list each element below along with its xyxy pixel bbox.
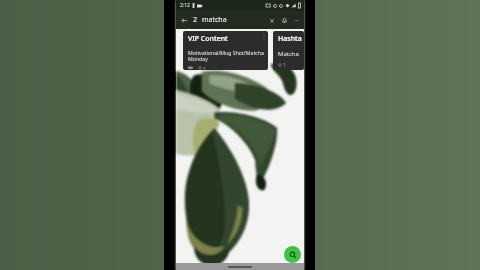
button[interactable]: Search — [284, 246, 301, 263]
staticText: 1 — [283, 61, 287, 68]
staticText: matcha — [202, 15, 227, 25]
staticText: Motivational/Mug Shot/Matcha Monday — [188, 49, 264, 63]
button[interactable]: Hashtags — [273, 31, 304, 70]
button[interactable]: Clear — [266, 15, 277, 26]
button[interactable]: VIP Content — [183, 31, 268, 70]
staticText: VIP Content — [188, 34, 228, 44]
staticText: 1 — [203, 65, 207, 70]
button[interactable]: Back — [179, 15, 190, 26]
staticText: Matcha — [278, 50, 299, 58]
button[interactable]: More options — [291, 15, 302, 26]
staticText: 2:12 — [180, 2, 190, 9]
staticText: Hashtags — [278, 34, 302, 44]
staticText: 2 — [193, 15, 198, 25]
button[interactable]: Notifications — [279, 15, 290, 26]
